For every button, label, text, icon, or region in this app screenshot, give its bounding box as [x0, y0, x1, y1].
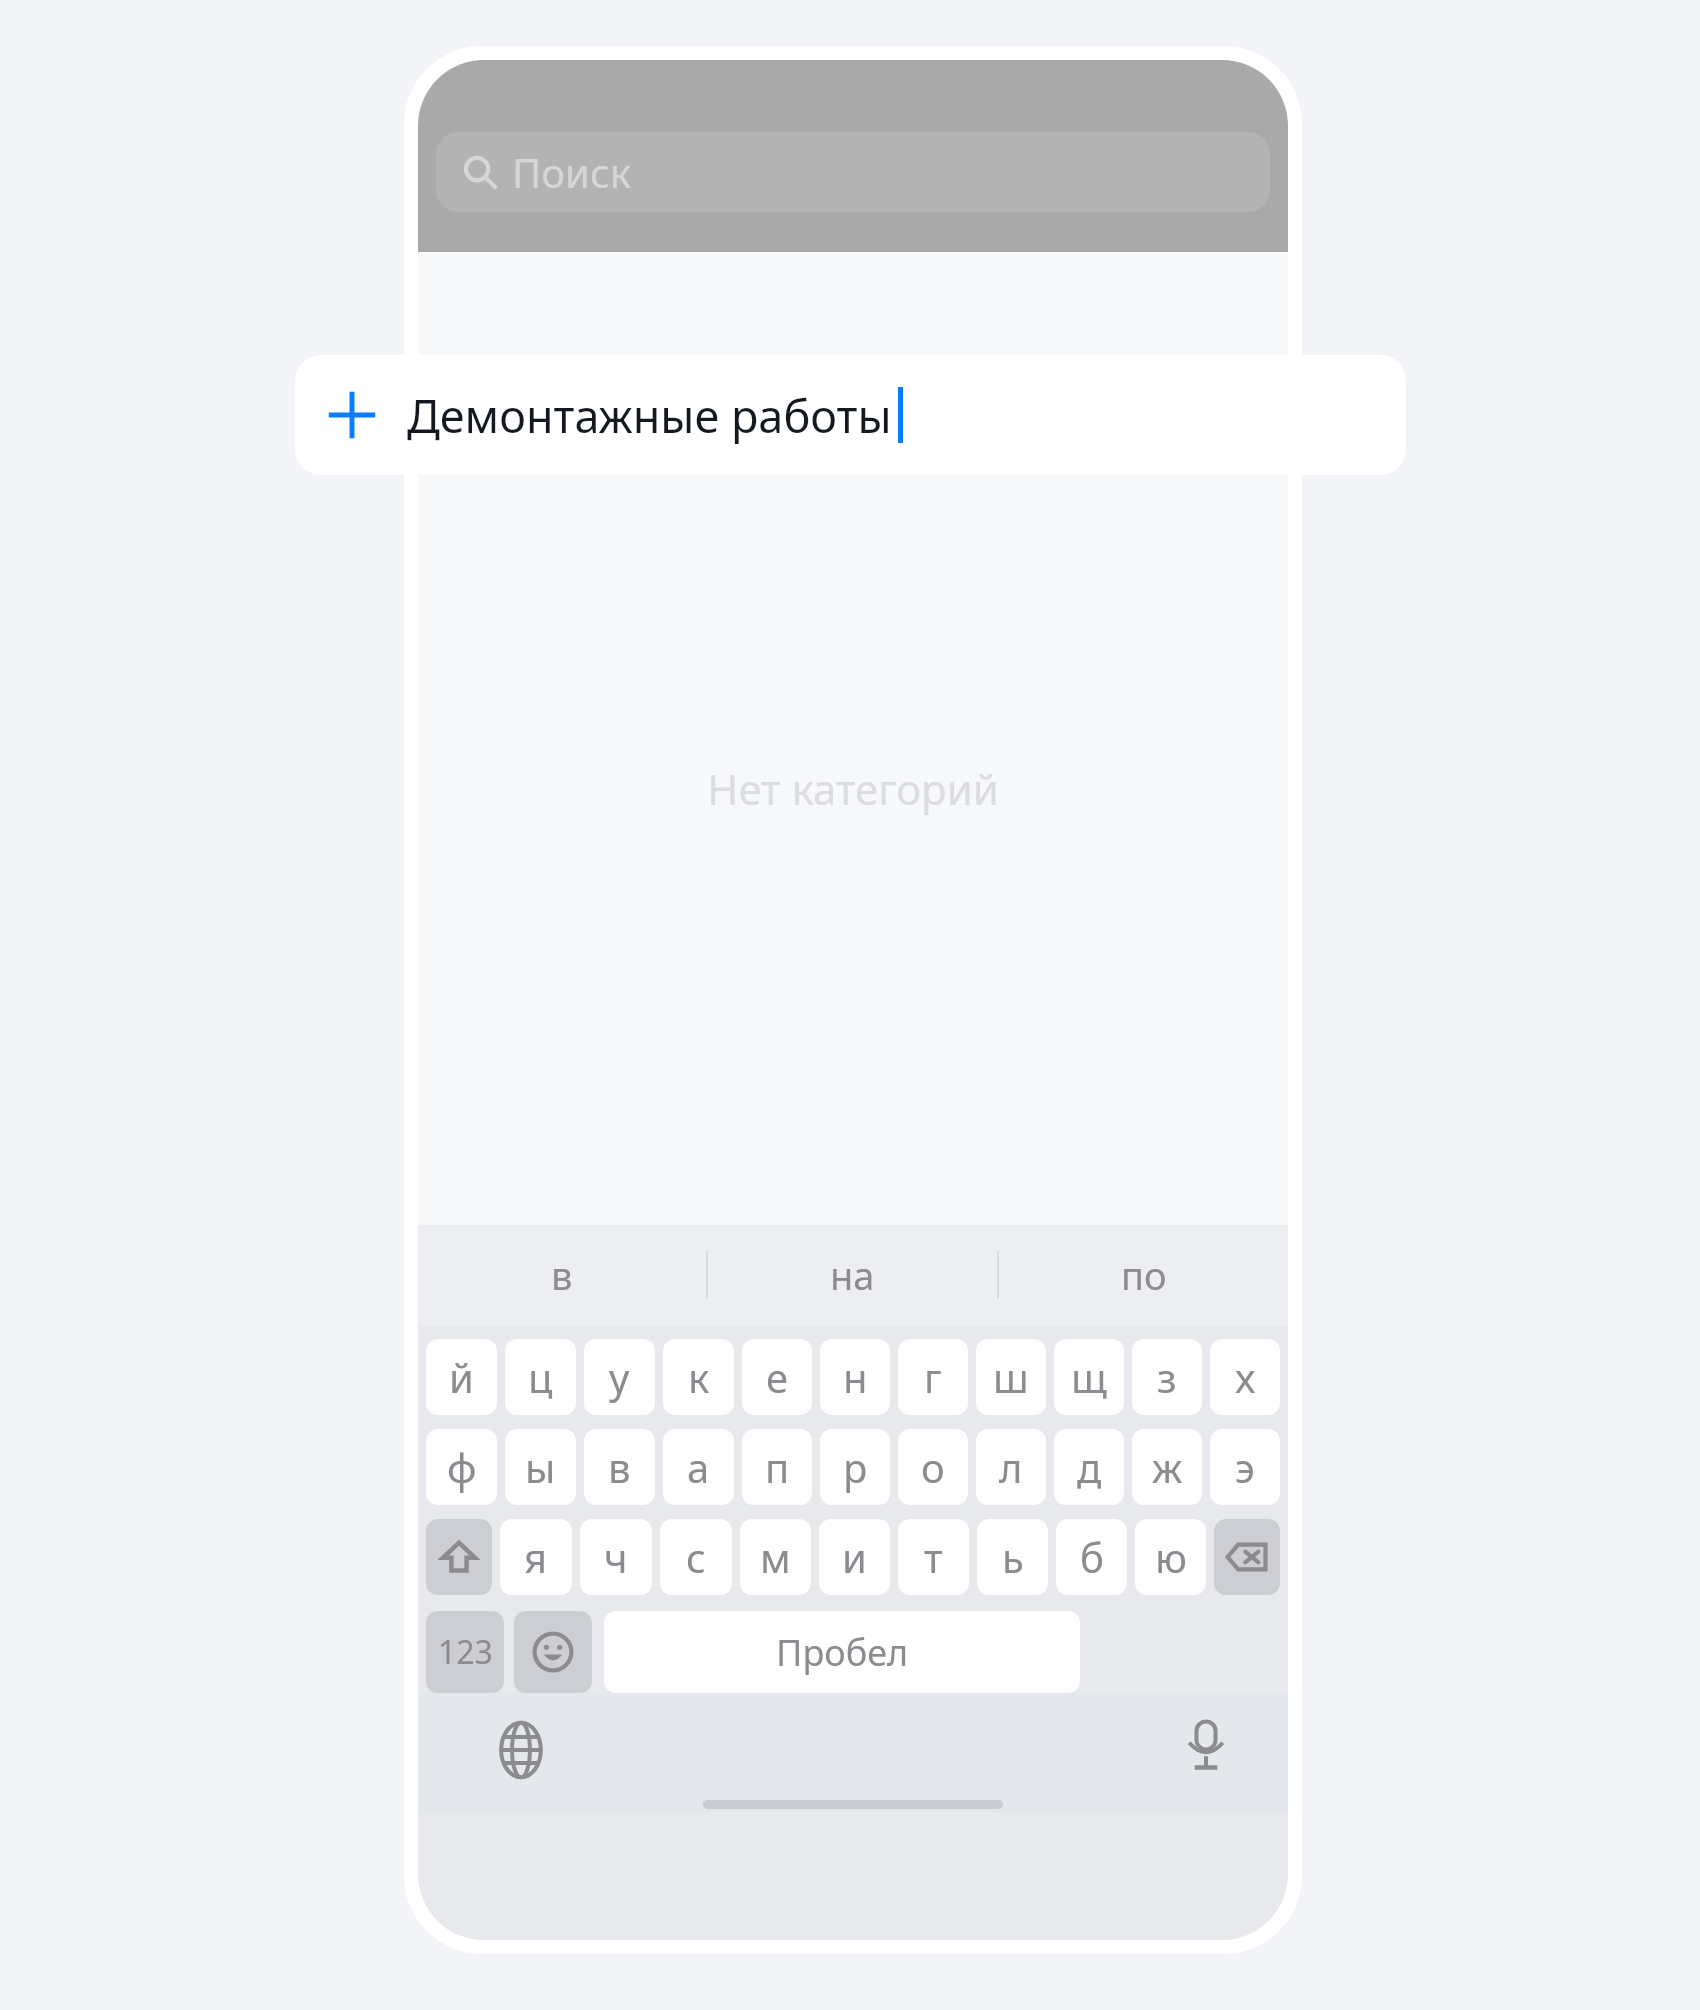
staticText: н — [843, 1350, 868, 1404]
staticText: х — [1235, 1350, 1256, 1404]
button[interactable]: в — [418, 1225, 706, 1325]
staticText: и — [842, 1530, 867, 1584]
button[interactable]: я — [500, 1519, 572, 1595]
staticText: на — [830, 1249, 875, 1301]
button[interactable]: г — [898, 1339, 968, 1415]
staticText: д — [1077, 1440, 1102, 1494]
button[interactable]: ь — [977, 1519, 1048, 1595]
staticText: ю — [1155, 1530, 1187, 1584]
staticText: я — [524, 1530, 548, 1584]
staticText: по — [1121, 1249, 1167, 1301]
staticText: к — [688, 1350, 710, 1404]
staticText: в — [608, 1440, 631, 1494]
staticText: г — [924, 1350, 942, 1404]
button[interactable]: ж — [1132, 1429, 1202, 1505]
button[interactable]: н — [820, 1339, 890, 1415]
staticText: а — [687, 1440, 710, 1494]
button[interactable]: ц — [505, 1339, 576, 1415]
button[interactable]: Voice input — [1178, 1717, 1234, 1773]
staticText: Поиск — [512, 145, 631, 199]
button[interactable]: Backspace — [1214, 1519, 1280, 1595]
button[interactable]: д — [1054, 1429, 1124, 1505]
button[interactable]: у — [584, 1339, 655, 1415]
staticText: о — [921, 1440, 945, 1494]
staticText: 123 — [438, 1630, 493, 1674]
button[interactable]: ы — [505, 1429, 576, 1505]
staticText: р — [843, 1440, 868, 1494]
button[interactable]: м — [740, 1519, 811, 1595]
staticText: Нет категорий — [418, 760, 1288, 817]
button[interactable]: п — [742, 1429, 812, 1505]
staticText: щ — [1071, 1350, 1107, 1404]
staticText: у — [609, 1350, 630, 1404]
button[interactable]: Поиск — [436, 132, 1270, 212]
button[interactable]: в — [584, 1429, 655, 1505]
button[interactable]: л — [976, 1429, 1046, 1505]
button[interactable]: и — [819, 1519, 890, 1595]
staticText: ф — [447, 1440, 477, 1494]
staticText: ж — [1152, 1440, 1183, 1494]
button[interactable]: 123 — [426, 1611, 504, 1693]
button[interactable]: ч — [580, 1519, 652, 1595]
button[interactable]: щ — [1054, 1339, 1124, 1415]
button[interactable]: е — [742, 1339, 812, 1415]
button[interactable]: с — [660, 1519, 732, 1595]
staticText: л — [999, 1440, 1023, 1494]
button[interactable]: Emoji — [514, 1611, 592, 1693]
staticText: з — [1157, 1350, 1177, 1404]
button[interactable]: Change language — [490, 1719, 552, 1781]
button[interactable]: ю — [1135, 1519, 1206, 1595]
button[interactable]: Shift — [426, 1519, 492, 1595]
staticText: п — [765, 1440, 790, 1494]
button[interactable]: к — [663, 1339, 734, 1415]
staticText: ч — [604, 1530, 628, 1584]
staticText: в — [551, 1249, 573, 1301]
button[interactable]: по — [999, 1225, 1288, 1325]
staticText: ы — [525, 1440, 556, 1494]
staticText: м — [760, 1530, 791, 1584]
staticText: Демонтажные работы — [407, 385, 892, 446]
button[interactable]: з — [1132, 1339, 1202, 1415]
button[interactable]: о — [898, 1429, 968, 1505]
staticText: б — [1080, 1530, 1104, 1584]
button[interactable]: э — [1210, 1429, 1280, 1505]
staticText: е — [766, 1350, 789, 1404]
staticText: ш — [993, 1350, 1029, 1404]
button[interactable]: на — [708, 1225, 997, 1325]
button[interactable]: р — [820, 1429, 890, 1505]
staticText: с — [686, 1530, 706, 1584]
staticText: Пробел — [776, 1628, 909, 1677]
button[interactable]: ф — [426, 1429, 497, 1505]
staticText: ц — [528, 1350, 553, 1404]
button[interactable]: а — [663, 1429, 734, 1505]
button[interactable]: ш — [976, 1339, 1046, 1415]
staticText: э — [1235, 1440, 1255, 1494]
button[interactable]: Пробел — [604, 1611, 1080, 1693]
button[interactable]: Демонтажные работы — [295, 355, 1406, 475]
button[interactable]: б — [1056, 1519, 1127, 1595]
button[interactable]: х — [1210, 1339, 1280, 1415]
staticText: й — [449, 1350, 474, 1404]
staticText: т — [924, 1530, 943, 1584]
staticText: ь — [1002, 1530, 1024, 1584]
button[interactable]: т — [898, 1519, 969, 1595]
button[interactable]: й — [426, 1339, 497, 1415]
